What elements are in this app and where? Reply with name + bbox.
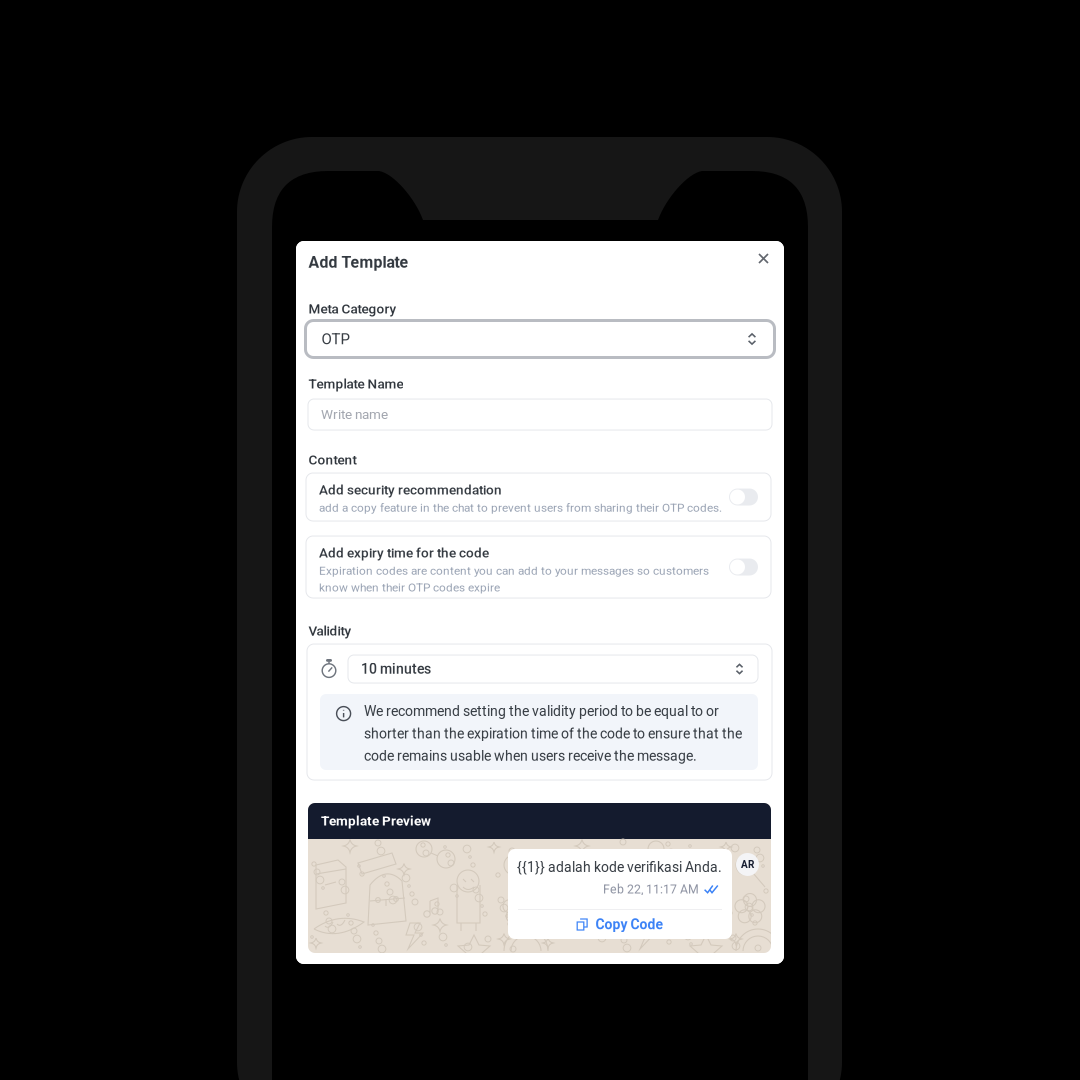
button[interactable]: OTP (305, 320, 774, 357)
staticText: Copy Code (595, 916, 663, 933)
button[interactable]: Close (750, 245, 777, 272)
staticText: Add expiry time for the code (319, 545, 489, 561)
button[interactable]: Toggle Add expiry time for the code (729, 558, 758, 575)
button[interactable]: 10 minutes (348, 655, 758, 683)
staticText: Template Preview (321, 813, 431, 829)
staticText: Add security recommendation (319, 482, 502, 498)
staticText: OTP (321, 330, 349, 348)
staticText: We recommend setting the validity period… (364, 703, 719, 719)
staticText: {{1}} adalah kode verifikasi Anda. (517, 859, 722, 875)
staticText: Template Name (308, 376, 403, 392)
staticText: Write name (321, 407, 388, 422)
staticText: AR (741, 859, 754, 870)
staticText: know when their OTP codes expire (319, 581, 500, 594)
staticText: Add Template (308, 253, 408, 271)
button[interactable]: Copy Code (508, 910, 732, 939)
staticText: Validity (308, 623, 351, 639)
staticText: add a copy feature in the chat to preven… (319, 501, 722, 515)
staticText: 10 minutes (361, 661, 431, 677)
staticText: Content (308, 452, 356, 468)
staticText: code remains usable when users receive t… (364, 748, 697, 764)
staticText: Feb 22, 11:17 AM (603, 882, 699, 896)
staticText: Expiration codes are content you can add… (319, 564, 709, 578)
staticText: shorter than the expiration time of the … (364, 725, 742, 742)
button[interactable]: Toggle Add security recommendation (729, 488, 758, 505)
button[interactable]: Write name (308, 399, 772, 430)
staticText: Meta Category (308, 301, 396, 317)
